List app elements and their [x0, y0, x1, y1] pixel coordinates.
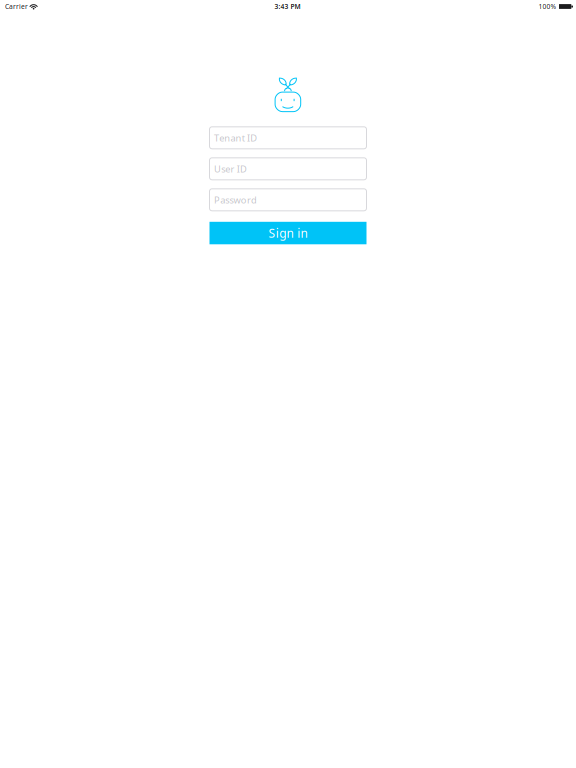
button[interactable]: User ID — [209, 158, 366, 180]
button[interactable]: Sign in — [209, 222, 366, 244]
button[interactable]: Password — [209, 189, 366, 211]
staticText: Password — [214, 194, 257, 206]
staticText: Sign in — [268, 225, 308, 241]
staticText: 3:43 PM — [274, 2, 300, 11]
staticText: 100% — [538, 2, 556, 11]
button[interactable]: Tenant ID — [209, 127, 366, 149]
staticText: Carrier — [5, 2, 28, 11]
staticText: User ID — [214, 163, 247, 175]
staticText: Tenant ID — [214, 132, 257, 144]
